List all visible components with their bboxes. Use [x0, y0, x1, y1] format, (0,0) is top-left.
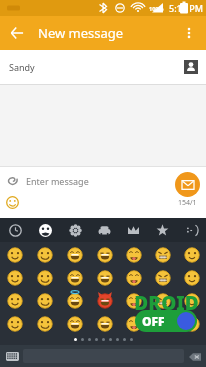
button[interactable]: Nature — [60, 218, 90, 242]
button[interactable]: Add contact — [184, 60, 198, 74]
staticText: DROID — [134, 290, 199, 316]
button[interactable]: Back — [0, 16, 34, 50]
button[interactable]: Emoji 16 — [60, 291, 90, 311]
button[interactable]: Smileys — [30, 218, 60, 242]
button[interactable]: Favorites — [148, 218, 177, 242]
button[interactable]: More options — [172, 16, 206, 50]
button[interactable]: Emoji 5 — [148, 245, 177, 265]
button[interactable]: Emoji 17 — [90, 291, 119, 311]
button[interactable]: Objects — [119, 218, 148, 242]
button[interactable]: Emoji 4 — [119, 245, 148, 265]
button[interactable]: Emoji 2 — [60, 245, 90, 265]
button[interactable]: Emoji 6 — [177, 245, 206, 265]
button[interactable]: Backspace — [186, 348, 203, 365]
button[interactable]: Emoji 9 — [60, 268, 90, 288]
button[interactable]: Emoji 10 — [90, 268, 119, 288]
button[interactable]: Emoji 7 — [0, 268, 30, 288]
button[interactable]: Send message — [175, 172, 200, 197]
button[interactable]: Emoji — [3, 193, 21, 211]
button[interactable]: Emoji 24 — [90, 314, 119, 334]
button[interactable]: Emoji 21 — [0, 314, 30, 334]
button[interactable]: Recent — [0, 218, 30, 242]
button[interactable]: Emoji 0 — [0, 245, 30, 265]
button[interactable]: Attach — [3, 171, 21, 189]
staticText: 154/1 — [178, 198, 197, 208]
staticText: OFF — [142, 313, 165, 329]
button[interactable]: Emoji 13 — [177, 268, 206, 288]
button[interactable]: Emoji 23 — [60, 314, 90, 334]
button[interactable]: Sandy — [0, 50, 206, 84]
button[interactable]: Emoji 1 — [30, 245, 60, 265]
button[interactable]: Emoji 3 — [90, 245, 119, 265]
button[interactable]: Emoji 12 — [148, 268, 177, 288]
button[interactable]: Emoticons — [177, 218, 206, 242]
staticText: 5:11 PM — [169, 2, 203, 14]
staticText: Sandy — [9, 61, 35, 73]
button[interactable]: Emoji 15 — [30, 291, 60, 311]
button[interactable]: Emoji 8 — [30, 268, 60, 288]
staticText: 100% — [149, 5, 164, 12]
button[interactable]: Emoji 27 — [177, 314, 206, 334]
button[interactable]: Emoji 26 — [148, 314, 177, 334]
button[interactable]: Switch keyboard — [4, 348, 21, 365]
button[interactable]: Emoji 11 — [119, 268, 148, 288]
button[interactable]: Emoji 18 — [119, 291, 148, 311]
button[interactable]: Emoji 22 — [30, 314, 60, 334]
staticText: Enter message — [26, 175, 89, 187]
button[interactable]: Emoji 25 — [119, 314, 148, 334]
button[interactable]: Emoji 14 — [0, 291, 30, 311]
button[interactable]: Travel — [90, 218, 119, 242]
staticText: New message — [38, 24, 124, 42]
button[interactable]: Emoji 20 — [177, 291, 206, 311]
button[interactable]: Emoji 19 — [148, 291, 177, 311]
